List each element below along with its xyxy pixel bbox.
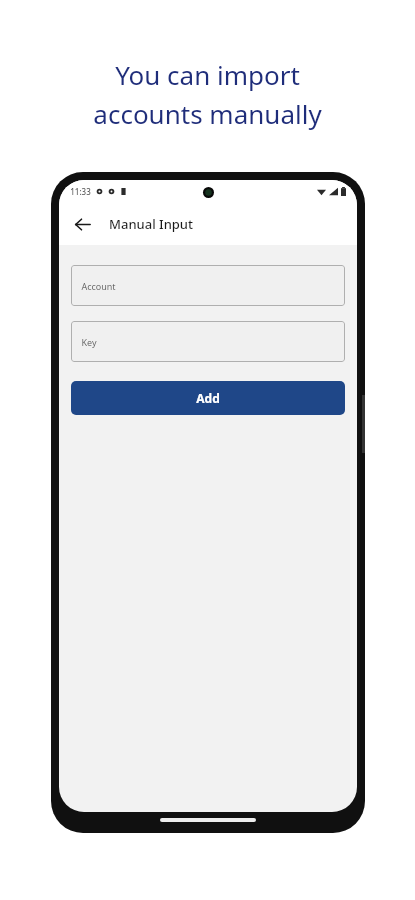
staticText: You can import <box>115 57 300 92</box>
staticText: 11:33 <box>70 186 91 197</box>
button[interactable]: Key <box>71 321 345 362</box>
staticText: Add <box>196 390 220 406</box>
button[interactable]: Account <box>71 265 345 306</box>
button[interactable]: Add <box>71 381 345 415</box>
staticText: Account <box>81 280 116 292</box>
button[interactable]: Back <box>66 208 98 240</box>
staticText: Key <box>81 336 97 348</box>
staticText: accounts manually <box>93 96 322 131</box>
staticText: Manual Input <box>109 215 193 233</box>
